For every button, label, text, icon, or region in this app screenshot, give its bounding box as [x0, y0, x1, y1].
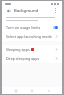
button[interactable]: Sleeping apps	[2, 45, 62, 54]
button[interactable]: Recents	[13, 88, 19, 94]
button[interactable]: Deep sleeping apps	[2, 54, 62, 63]
button[interactable]: Turn on usage limits	[2, 23, 62, 32]
button[interactable]: Back	[5, 7, 12, 14]
button[interactable]: Home	[29, 88, 35, 94]
staticText: Sleeping apps	[6, 47, 30, 52]
button[interactable]: More options	[52, 7, 59, 14]
button[interactable]: Turn on usage limits toggle	[53, 26, 58, 29]
staticText: Select app launching mode	[6, 34, 53, 39]
staticText: Deep sleeping apps	[6, 56, 53, 61]
button[interactable]: Back	[46, 88, 52, 94]
staticText: Turn on usage limits	[6, 25, 51, 30]
button[interactable]: Select app launching mode	[2, 32, 62, 41]
staticText: Background usage limits	[14, 8, 51, 14]
